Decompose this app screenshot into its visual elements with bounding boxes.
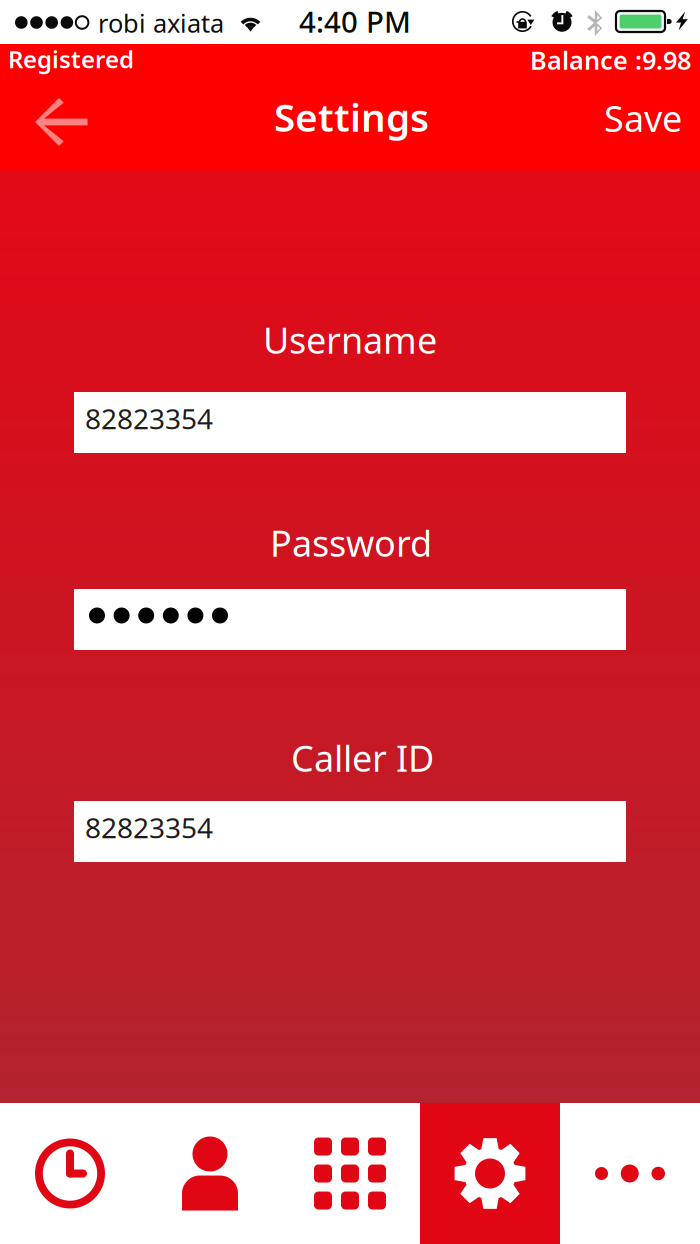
button[interactable]: Recents [0, 1103, 140, 1244]
staticText: Balance :9.98 [530, 43, 691, 77]
staticText: Caller ID [291, 734, 434, 782]
staticText: 4:40 PM [299, 2, 411, 41]
button[interactable] [74, 589, 626, 650]
button[interactable]: 82823354 [74, 392, 626, 453]
button[interactable]: Keypad [280, 1103, 420, 1244]
staticText: robi axiata [98, 6, 224, 40]
staticText: Settings [274, 91, 429, 142]
button[interactable]: Save [586, 94, 700, 142]
staticText: Save [604, 94, 682, 142]
button[interactable]: More [560, 1103, 700, 1244]
staticText: 82823354 [85, 809, 213, 846]
staticText: Registered [8, 43, 134, 75]
button[interactable]: 82823354 [74, 801, 626, 862]
staticText: Password [270, 519, 432, 567]
staticText: Username [263, 316, 437, 364]
button[interactable]: Back [10, 80, 114, 164]
button[interactable]: Settings [420, 1103, 560, 1244]
staticText: 82823354 [85, 400, 213, 437]
button[interactable]: Contacts [140, 1103, 280, 1244]
